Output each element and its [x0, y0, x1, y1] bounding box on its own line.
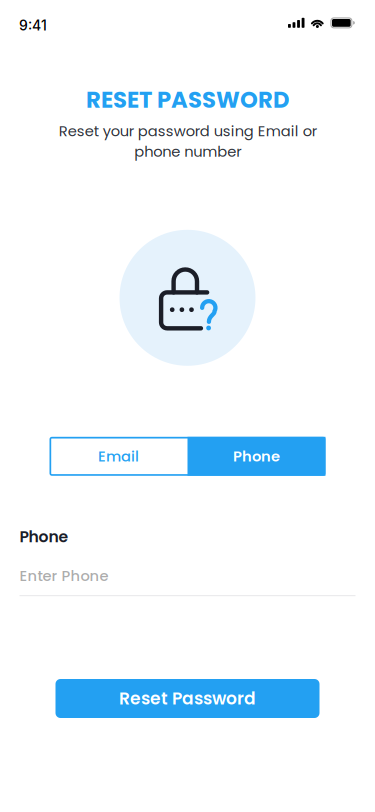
staticText: Phone [19, 526, 68, 548]
button[interactable]: Reset Password [55, 679, 319, 718]
staticText: Enter Phone [19, 566, 108, 586]
staticText: 9:41 [19, 17, 47, 34]
staticText: Reset your password using Email or phone… [58, 121, 316, 162]
button[interactable]: Phone [187, 437, 325, 476]
staticText: Reset Password [119, 687, 256, 710]
button[interactable]: Email [49, 437, 187, 476]
staticText: Email [98, 446, 139, 466]
staticText: Phone [233, 446, 280, 466]
staticText: RESET PASSWORD [86, 84, 289, 116]
